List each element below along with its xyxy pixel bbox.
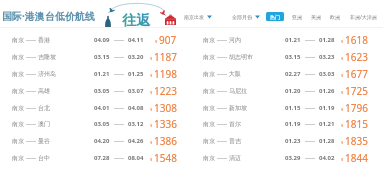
staticText: 亚洲 [292,14,302,20]
staticText: ¥ [341,140,344,145]
button[interactable]: 南京出发 [184,11,212,23]
staticText: ¥ [155,39,158,44]
staticText: 1815 [345,117,368,131]
staticText: 美洲 [311,14,321,20]
staticText: 03.05 [94,87,110,95]
staticText: ¥ [150,140,153,145]
staticText: ¥ [341,39,344,44]
staticText: ¥ [150,123,153,128]
staticText: 04.01 [94,104,110,112]
staticText: 01.21 [94,70,110,78]
staticText: 1223 [154,84,177,98]
button[interactable]: 南京 [0,82,191,99]
staticText: 南京 [203,104,215,112]
button[interactable]: 全部月份 [232,11,260,23]
staticText: 全部月份 [232,14,252,20]
staticText: 南京 [203,120,215,128]
staticText: 03.12 [128,120,144,128]
staticText: 首尔 [229,120,241,128]
button[interactable]: 南京 [191,99,382,116]
staticText: 济州岛 [38,70,56,78]
button[interactable]: 热门 [266,12,284,21]
staticText: 普吉 [229,137,241,145]
staticText: 04.11 [128,36,144,44]
staticText: 1336 [154,117,177,131]
staticText: 台北 [38,104,50,112]
staticText: 往返 [122,12,150,30]
staticText: 01.23 [285,137,301,145]
staticText: 01.15 [285,104,301,112]
button[interactable]: 美洲 [307,11,325,23]
button[interactable]: 南京 [191,82,382,99]
staticText: ¥ [341,73,344,78]
staticText: 03.07 [128,87,144,95]
staticText: 南京 [12,36,24,44]
staticText: 1725 [345,84,368,98]
button[interactable]: 南京 [0,65,191,82]
staticText: 新加坡 [229,104,247,112]
staticText: 01.20 [285,87,301,95]
button[interactable]: 南京 [0,31,191,48]
button[interactable]: 南京 [0,115,191,132]
staticText: 南京 [203,36,215,44]
button[interactable]: 亚洲 [288,11,306,23]
staticText: 南京 [12,70,24,78]
button[interactable]: 南京 [191,31,382,48]
button[interactable]: 南京 [191,65,382,82]
staticText: 01.25 [128,70,144,78]
staticText: 1386 [154,134,177,148]
button[interactable]: 南京 [0,149,191,166]
staticText: 大阪 [229,70,241,78]
staticText: 清迈 [229,154,241,162]
staticText: 01.21 [319,120,335,128]
staticText: 南京 [12,87,24,95]
staticText: 01.26 [319,87,335,95]
staticText: 01.19 [285,120,301,128]
staticText: 1623 [345,50,368,64]
staticText: ¥ [150,73,153,78]
button[interactable]: 欧洲 [326,11,344,23]
button[interactable]: 南京 [0,48,191,65]
staticText: 01.28 [319,36,335,44]
staticText: 1835 [345,134,368,148]
staticText: 04.02 [319,154,335,162]
staticText: 南京 [203,137,215,145]
staticText: 04.26 [128,137,144,145]
staticText: 03.29 [285,154,301,162]
staticText: 03.03 [319,70,335,78]
staticText: ¥ [150,56,153,61]
button[interactable]: 非洲/大洋洲 [346,11,381,24]
button[interactable]: 南京 [191,48,382,65]
staticText: 1198 [154,67,177,81]
staticText: 澳门 [38,120,50,128]
staticText: 台中 [38,154,50,162]
staticText: 07.28 [94,154,110,162]
button[interactable]: 南京 [191,132,382,149]
staticText: 河内 [229,36,241,44]
button[interactable]: 南京 [191,115,382,132]
staticText: 01.21 [285,36,301,44]
staticText: ¥ [341,56,344,61]
button[interactable]: 南京 [191,149,382,166]
button[interactable]: 南京 [0,99,191,116]
staticText: 国际·港澳台低价航线 [2,9,95,23]
staticText: 01.28 [319,137,335,145]
staticText: 907 [159,33,177,47]
staticText: 南京 [203,70,215,78]
staticText: 03.05 [94,120,110,128]
staticText: ¥ [150,90,153,95]
button[interactable]: 南京 [0,132,191,149]
staticText: ¥ [341,90,344,95]
staticText: 南京 [12,137,24,145]
staticText: 热门 [270,14,280,20]
staticText: 1308 [154,101,177,115]
staticText: 04.20 [94,137,110,145]
staticText: 南京 [12,120,24,128]
staticText: 高雄 [38,87,50,95]
staticText: 03.15 [94,53,110,61]
staticText: 香港 [38,36,50,44]
staticText: 03.23 [319,53,335,61]
staticText: 曼谷 [38,137,50,145]
staticText: 03.20 [128,53,144,61]
staticText: ¥ [341,157,344,162]
